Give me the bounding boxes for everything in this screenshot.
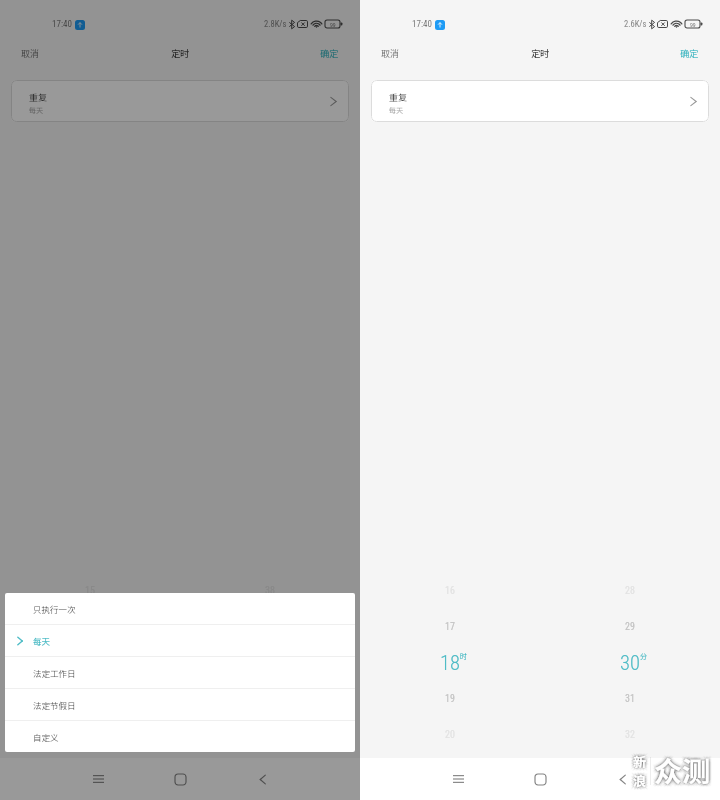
button[interactable]: 重复 bbox=[11, 80, 349, 122]
staticText: 2.6K/s bbox=[624, 19, 647, 29]
staticText: 确定 bbox=[320, 47, 339, 60]
button[interactable]: 19 bbox=[445, 693, 455, 705]
staticText: 众测 bbox=[656, 750, 713, 791]
button[interactable]: Home bbox=[159, 758, 201, 800]
button[interactable]: 38 bbox=[265, 585, 275, 597]
button[interactable]: 40 bbox=[257, 651, 284, 675]
button[interactable]: Recent apps bbox=[77, 758, 119, 800]
staticText: 浪 bbox=[635, 769, 649, 788]
staticText: 17 bbox=[80, 651, 100, 675]
button[interactable]: 每天 bbox=[5, 625, 355, 656]
staticText: 定时 bbox=[531, 47, 550, 60]
staticText: 众测 bbox=[652, 748, 709, 789]
staticText: 取消 bbox=[381, 47, 400, 60]
staticText: 浪 bbox=[633, 771, 647, 790]
staticText: 浪 bbox=[634, 770, 648, 789]
staticText: 众测 bbox=[651, 747, 708, 788]
staticText: 众测 bbox=[654, 752, 711, 793]
staticText: 新 bbox=[634, 753, 648, 772]
button[interactable]: 16 bbox=[85, 621, 95, 633]
staticText: 浪 bbox=[635, 771, 649, 790]
staticText: 新 bbox=[630, 749, 644, 768]
staticText: 新 bbox=[631, 754, 645, 773]
staticText: 重复 bbox=[29, 91, 48, 104]
button[interactable]: 20 bbox=[445, 729, 455, 741]
staticText: 浪 bbox=[634, 772, 648, 791]
staticText: 浪 bbox=[631, 769, 645, 788]
staticText: 众测 bbox=[654, 750, 711, 791]
staticText: 新 bbox=[633, 750, 647, 769]
staticText: 取消 bbox=[21, 47, 40, 60]
staticText: 重复 bbox=[389, 91, 408, 104]
staticText: 18 bbox=[440, 651, 460, 675]
staticText: 众测 bbox=[656, 752, 713, 793]
staticText: 每天 bbox=[29, 105, 43, 115]
staticText: 浪 bbox=[630, 771, 644, 790]
staticText: 每天 bbox=[389, 105, 403, 115]
staticText: 众测 bbox=[655, 749, 712, 790]
staticText: 众测 bbox=[654, 751, 711, 792]
staticText: 新 bbox=[633, 749, 647, 768]
button[interactable]: 取消 bbox=[360, 41, 421, 66]
staticText: 浪 bbox=[635, 773, 649, 792]
button[interactable]: 32 bbox=[625, 729, 635, 741]
staticText: 99 bbox=[330, 21, 336, 28]
staticText: 新 bbox=[635, 752, 649, 771]
button[interactable]: 15 bbox=[85, 585, 95, 597]
staticText: 浪 bbox=[630, 768, 644, 787]
button[interactable]: 18 bbox=[437, 651, 464, 675]
staticText: 众测 bbox=[653, 750, 710, 791]
button[interactable]: 确定 bbox=[299, 41, 360, 66]
button[interactable]: 16 bbox=[445, 585, 455, 597]
staticText: 新 bbox=[636, 749, 650, 768]
button[interactable]: 31 bbox=[625, 693, 635, 705]
staticText: 新 bbox=[634, 752, 648, 771]
staticText: 99 bbox=[690, 21, 696, 28]
staticText: 法定节假日 bbox=[33, 699, 76, 711]
staticText: 新 bbox=[634, 751, 648, 770]
staticText: 众测 bbox=[651, 753, 708, 794]
staticText: 新 bbox=[633, 752, 647, 771]
button[interactable]: 重复 bbox=[371, 80, 709, 122]
staticText: 浪 bbox=[636, 771, 650, 790]
button[interactable]: 只执行一次 bbox=[5, 593, 355, 624]
button[interactable]: Back bbox=[241, 758, 283, 800]
button[interactable]: 取消 bbox=[0, 41, 61, 66]
staticText: 浪 bbox=[630, 774, 644, 793]
staticText: 众测 bbox=[652, 750, 709, 791]
button[interactable]: 法定工作日 bbox=[5, 657, 355, 688]
staticText: 浪 bbox=[633, 772, 647, 791]
staticText: 新 bbox=[636, 752, 650, 771]
staticText: 法定工作日 bbox=[33, 667, 76, 679]
button[interactable]: 39 bbox=[265, 621, 275, 633]
staticText: 新 bbox=[635, 754, 649, 773]
button[interactable]: Home bbox=[519, 758, 561, 800]
button[interactable]: 17 bbox=[445, 621, 455, 633]
staticText: 浪 bbox=[634, 771, 648, 790]
staticText: 时 bbox=[100, 651, 107, 661]
staticText: 众测 bbox=[657, 750, 714, 791]
staticText: 浪 bbox=[631, 771, 645, 790]
button[interactable]: Recent apps bbox=[437, 758, 479, 800]
staticText: 17:40 bbox=[412, 19, 432, 30]
button[interactable]: 17 bbox=[77, 651, 104, 675]
button[interactable]: 法定节假日 bbox=[5, 689, 355, 720]
button[interactable]: 自定义 bbox=[5, 721, 355, 752]
button[interactable]: Back bbox=[601, 758, 643, 800]
button[interactable]: 30 bbox=[617, 651, 644, 675]
button[interactable]: 28 bbox=[625, 585, 635, 597]
staticText: 浪 bbox=[633, 769, 647, 788]
staticText: 众测 bbox=[657, 753, 714, 794]
staticText: 新 bbox=[635, 750, 649, 769]
staticText: 众测 bbox=[654, 749, 711, 790]
staticText: 众测 bbox=[651, 750, 708, 791]
staticText: 新 bbox=[632, 751, 646, 770]
button[interactable]: 29 bbox=[625, 621, 635, 633]
button[interactable]: 确定 bbox=[659, 41, 720, 66]
staticText: 众测 bbox=[656, 748, 713, 789]
staticText: 新 bbox=[631, 752, 645, 771]
